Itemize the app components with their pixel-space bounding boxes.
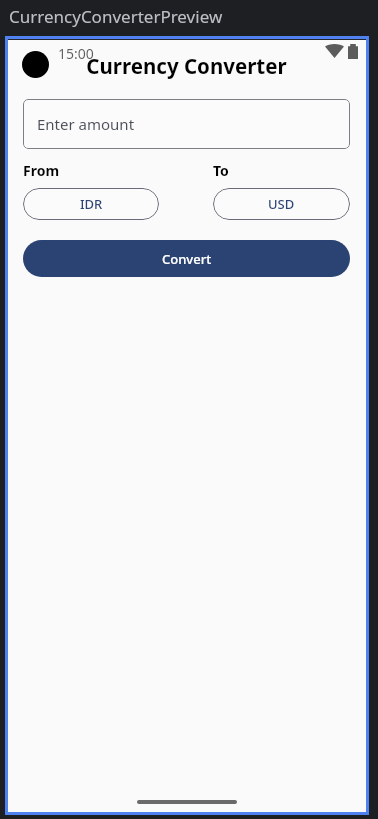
staticText: Currency Converter [23,52,350,80]
staticText: Convert [162,250,212,268]
staticText: To [213,161,229,180]
staticText: CurrencyConverterPreview [9,5,223,28]
staticText: 15:00 [58,44,94,63]
staticText: Enter amount [37,114,135,134]
button[interactable]: Convert [23,240,350,277]
button[interactable]: Enter amount [23,99,350,149]
staticText: From [23,161,60,180]
button[interactable]: IDR [23,188,159,220]
staticText: USD [268,195,295,213]
staticText: IDR [80,195,103,213]
button[interactable]: USD [213,188,350,220]
